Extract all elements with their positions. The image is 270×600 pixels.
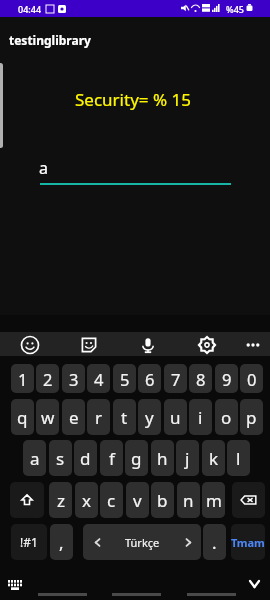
staticText: Tmam <box>231 535 265 550</box>
staticText: i <box>198 406 203 429</box>
button[interactable]: s <box>49 440 72 476</box>
staticText: z <box>57 489 65 512</box>
staticText: s <box>56 447 65 470</box>
button[interactable]: k <box>202 440 225 476</box>
staticText: u <box>170 406 181 429</box>
staticText: a <box>39 157 48 179</box>
button[interactable]: !#1 <box>11 524 47 560</box>
button[interactable]: 0 <box>240 364 263 393</box>
button[interactable]: c <box>100 482 123 518</box>
button[interactable]: , <box>50 524 73 560</box>
staticText: y <box>145 406 154 429</box>
staticText: e <box>69 406 79 429</box>
button[interactable]: 6 <box>138 364 161 393</box>
staticText: a <box>30 447 40 470</box>
button[interactable]: p <box>240 399 263 435</box>
button[interactable]: Emoji <box>20 335 40 355</box>
staticText: 9 <box>222 368 232 390</box>
button[interactable]: r <box>87 399 110 435</box>
button[interactable]: j <box>176 440 199 476</box>
staticText: 6 <box>145 368 155 390</box>
button[interactable]: 9 <box>215 364 238 393</box>
staticText: Security= % 15 <box>75 88 191 111</box>
button[interactable]: o <box>215 399 238 435</box>
staticText: , <box>59 531 64 554</box>
button[interactable]: i <box>189 399 212 435</box>
button[interactable]: Shift <box>10 482 44 518</box>
staticText: q <box>17 406 28 429</box>
staticText: 5 <box>120 368 130 390</box>
staticText: 1 <box>18 368 28 390</box>
button[interactable]: . <box>203 524 226 560</box>
staticText: 04:44 <box>18 3 42 15</box>
staticText: 4 <box>94 368 104 390</box>
staticText: o <box>221 406 232 429</box>
staticText: t <box>121 406 128 429</box>
button[interactable]: d <box>74 440 97 476</box>
staticText: h <box>157 447 168 470</box>
staticText: 0 <box>247 368 257 390</box>
staticText: w <box>41 406 55 429</box>
button[interactable]: Tmam <box>231 524 265 560</box>
staticText: 7 <box>171 368 181 390</box>
button[interactable]: Settings <box>197 335 217 355</box>
staticText: 2 <box>43 368 53 390</box>
staticText: v <box>133 489 142 512</box>
staticText: j <box>185 447 190 470</box>
staticText: c <box>107 489 116 512</box>
staticText: . <box>212 531 217 554</box>
button[interactable]: a <box>23 440 46 476</box>
button[interactable]: y <box>138 399 161 435</box>
staticText: !#1 <box>20 534 38 550</box>
button[interactable]: h <box>151 440 174 476</box>
button[interactable]: Backspace <box>232 482 265 518</box>
button[interactable]: 5 <box>113 364 136 393</box>
button[interactable]: x <box>75 482 98 518</box>
staticText: b <box>157 489 168 512</box>
button[interactable]: 8 <box>189 364 212 393</box>
staticText: r <box>95 406 103 429</box>
button[interactable]: t <box>113 399 136 435</box>
button[interactable]: e <box>62 399 85 435</box>
staticText: n <box>183 489 194 512</box>
staticText: 8 <box>196 368 206 390</box>
button[interactable]: Türkçe <box>83 524 201 560</box>
staticText: 3 <box>69 368 79 390</box>
staticText: g <box>131 447 142 470</box>
button[interactable]: q <box>11 399 34 435</box>
staticText: %45 <box>226 3 244 15</box>
staticText: p <box>246 406 257 429</box>
button[interactable]: 3 <box>62 364 85 393</box>
button[interactable]: z <box>49 482 72 518</box>
button[interactable]: f <box>100 440 123 476</box>
button[interactable]: Stickers <box>79 335 99 355</box>
staticText: k <box>209 447 219 470</box>
button[interactable]: Voice input <box>138 335 158 355</box>
staticText: l <box>236 447 241 470</box>
button[interactable]: 7 <box>164 364 187 393</box>
button[interactable]: u <box>164 399 187 435</box>
button[interactable]: More options <box>243 335 263 355</box>
staticText: f <box>109 447 115 470</box>
button[interactable]: m <box>202 482 225 518</box>
button[interactable]: Switch keyboard <box>4 576 26 593</box>
staticText: d <box>80 447 91 470</box>
button[interactable]: b <box>151 482 174 518</box>
button[interactable]: Hide keyboard <box>246 576 263 592</box>
button[interactable]: w <box>36 399 59 435</box>
staticText: x <box>82 489 91 512</box>
button[interactable]: v <box>126 482 149 518</box>
button[interactable]: 2 <box>36 364 59 393</box>
button[interactable]: g <box>125 440 148 476</box>
staticText: Türkçe <box>125 535 160 550</box>
button[interactable]: 1 <box>11 364 34 393</box>
button[interactable]: l <box>227 440 250 476</box>
button[interactable]: n <box>177 482 200 518</box>
button[interactable]: 4 <box>87 364 110 393</box>
staticText: testinglibrary <box>9 32 91 48</box>
staticText: m <box>206 489 222 512</box>
